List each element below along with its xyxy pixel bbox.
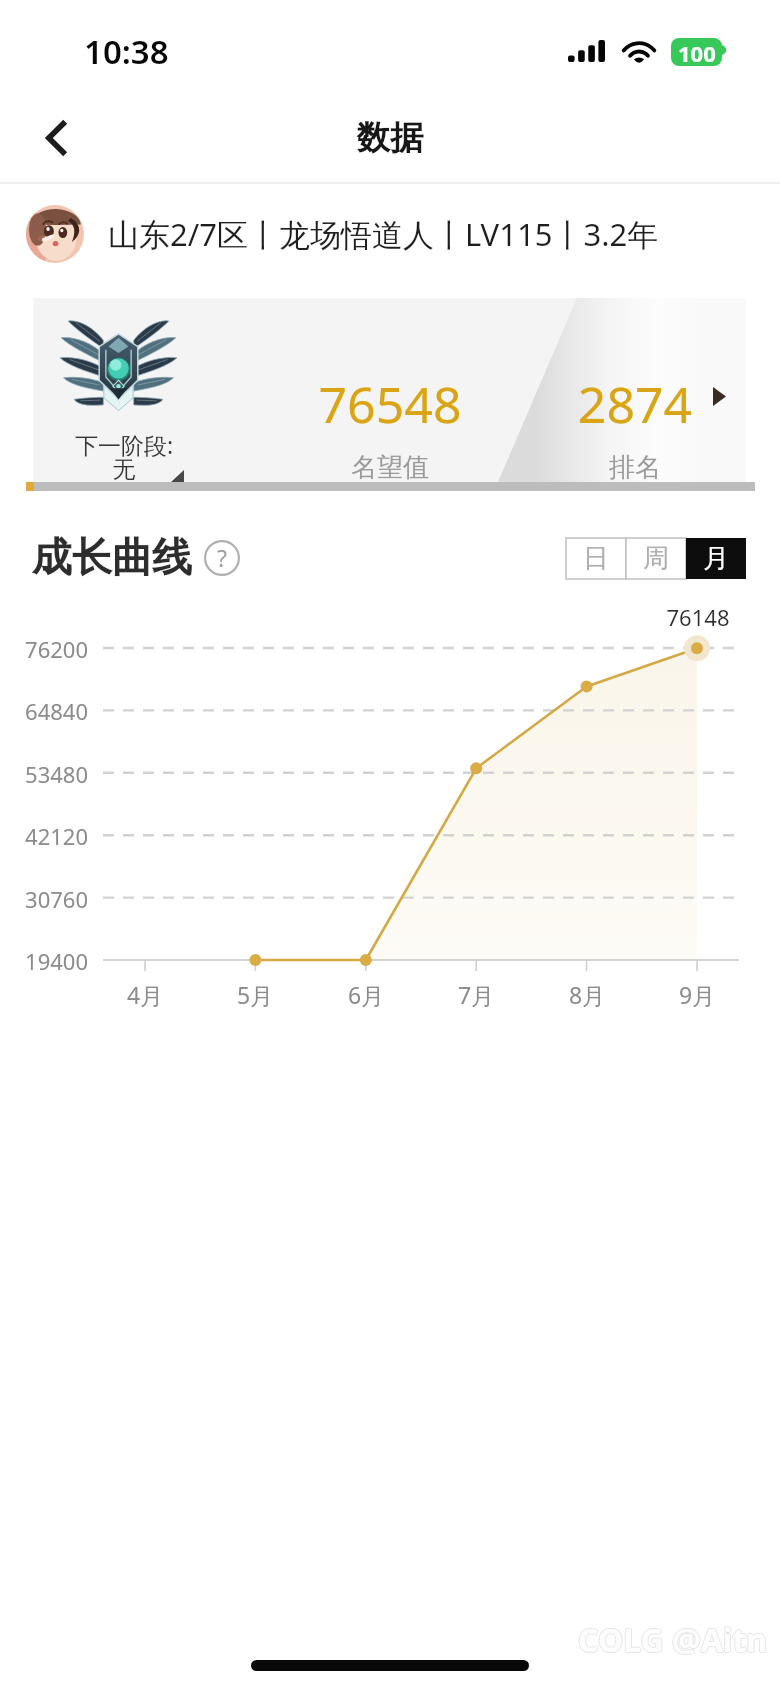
staticText: 8月 — [547, 979, 627, 1010]
staticText: ? — [217, 542, 227, 573]
staticText: 64840 — [0, 696, 88, 726]
staticText: 30760 — [0, 884, 88, 914]
button[interactable]: 周 — [626, 538, 686, 579]
staticText: 9月 — [657, 979, 737, 1010]
button[interactable]: Back — [24, 106, 88, 170]
staticText: 数据 — [357, 117, 423, 159]
staticText: COLG @Aitn — [577, 1618, 767, 1662]
staticText: 成长曲线 — [32, 532, 192, 582]
staticText: 100 — [678, 38, 716, 66]
staticText: COLG @Aitn — [578, 1619, 768, 1663]
staticText: 无 — [49, 455, 199, 484]
staticText: 19400 — [0, 946, 88, 976]
staticText: 排名 — [535, 451, 735, 484]
button[interactable]: Help — [204, 540, 240, 576]
button[interactable]: 月 — [686, 538, 746, 579]
staticText: 5月 — [215, 979, 295, 1010]
staticText: 76548 — [290, 370, 490, 438]
staticText: 月 — [703, 542, 729, 575]
button[interactable]: 山东2/7区丨龙场悟道人丨LV115丨3.2年 — [0, 184, 780, 284]
button[interactable]: 日 — [566, 538, 626, 579]
staticText: 下一阶段: — [49, 429, 199, 460]
staticText: 6月 — [326, 979, 406, 1010]
staticText: 7月 — [436, 979, 516, 1010]
staticText: 76148 — [642, 602, 754, 632]
staticText: 76200 — [0, 634, 88, 664]
staticText: 日 — [583, 542, 609, 575]
staticText: 山东2/7区丨龙场悟道人丨LV115丨3.2年 — [108, 213, 659, 255]
staticText: 4月 — [105, 979, 185, 1010]
staticText: 10:38 — [84, 29, 169, 74]
staticText: 42120 — [0, 821, 88, 851]
staticText: COLG @Aitn — [579, 1618, 769, 1662]
staticText: COLG @Aitn — [578, 1617, 768, 1661]
staticText: COLG @Aitn — [578, 1618, 768, 1662]
staticText: 53480 — [0, 759, 88, 789]
staticText: 名望值 — [290, 451, 490, 484]
staticText: 2874 — [535, 370, 735, 438]
button[interactable]: 下一阶段: — [33, 298, 746, 482]
staticText: 周 — [643, 542, 669, 575]
